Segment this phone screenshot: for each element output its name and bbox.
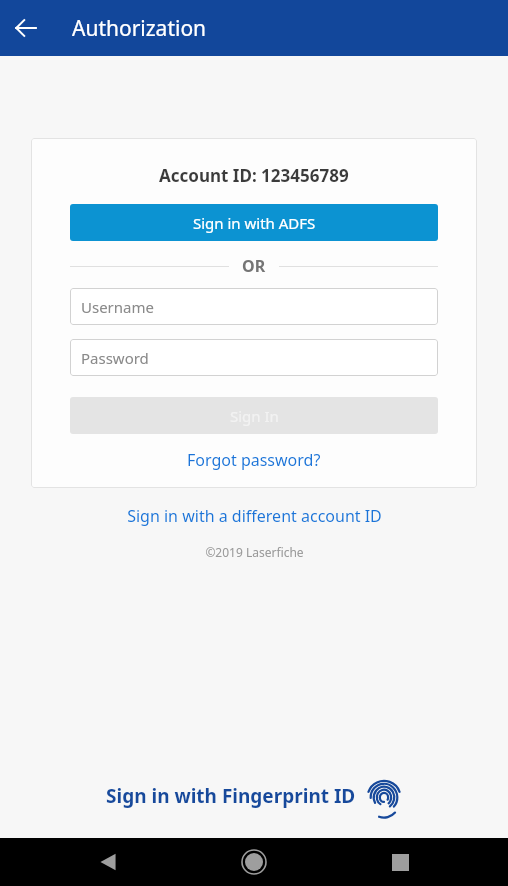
button[interactable]: Back <box>4 6 48 50</box>
staticText: Authorization <box>72 14 207 43</box>
staticText: Account ID: 123456789 <box>159 164 349 187</box>
staticText: Sign in with ADFS <box>193 213 316 233</box>
staticText: Username <box>81 297 154 317</box>
button[interactable]: Sign in with Fingerprint ID <box>106 778 402 814</box>
button[interactable]: Sign in with a different account ID <box>119 502 390 530</box>
staticText: Forgot password? <box>187 449 321 471</box>
button[interactable]: Forgot password? <box>181 446 327 474</box>
staticText: Password <box>81 348 149 368</box>
staticText: Sign in with Fingerprint ID <box>106 783 356 809</box>
button[interactable]: Username <box>70 288 438 325</box>
button[interactable]: Recent apps <box>378 840 422 884</box>
staticText: ©2019 Laserfiche <box>205 544 304 560</box>
button[interactable]: Sign in with ADFS <box>70 204 438 241</box>
button[interactable]: Back <box>86 840 130 884</box>
staticText: OR <box>242 255 266 277</box>
button[interactable]: Home <box>232 840 276 884</box>
staticText: Sign In <box>230 406 279 426</box>
staticText: Sign in with a different account ID <box>127 505 382 527</box>
button[interactable]: Password <box>70 339 438 376</box>
